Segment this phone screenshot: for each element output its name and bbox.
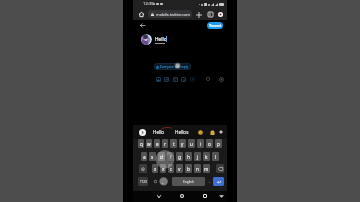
staticText: a <box>143 154 146 160</box>
button[interactable]: m <box>203 164 210 173</box>
button[interactable]: b <box>185 164 192 173</box>
button[interactable]: x <box>160 164 166 173</box>
button[interactable]: s <box>149 152 156 161</box>
staticText: e <box>156 141 159 147</box>
button[interactable]: Emoji <box>179 75 187 83</box>
button[interactable]: ?123 <box>138 177 148 186</box>
staticText: s <box>151 154 154 160</box>
staticText: n <box>196 166 199 172</box>
button[interactable]: t <box>170 139 177 148</box>
staticText: Tweet <box>209 23 222 28</box>
staticText: g <box>178 154 181 160</box>
button[interactable]: i <box>197 139 204 148</box>
button[interactable]: Add another tweet <box>217 75 225 83</box>
button[interactable]: p <box>215 139 222 148</box>
button[interactable]: Hide keyboard <box>217 192 225 200</box>
staticText: mobile.twitter.com <box>156 12 190 17</box>
button[interactable]: Emoji <box>196 128 204 136</box>
button[interactable]: o <box>206 139 213 148</box>
button[interactable]: z <box>152 164 158 173</box>
button[interactable]: Period <box>206 176 213 187</box>
button[interactable]: Recent apps <box>201 192 209 200</box>
staticText: r <box>164 141 166 147</box>
staticText: z <box>154 166 157 172</box>
button[interactable]: g <box>176 152 183 161</box>
button[interactable]: Back <box>138 21 147 30</box>
button[interactable]: Hellos <box>171 125 192 139</box>
button[interactable]: Back <box>155 192 163 200</box>
staticText: Hello <box>155 36 167 43</box>
staticText: . <box>209 179 211 184</box>
staticText: English <box>183 180 194 184</box>
button[interactable]: e <box>154 139 160 148</box>
button[interactable]: h <box>185 152 192 161</box>
staticText: Hello <box>153 129 165 135</box>
button[interactable]: Enter <box>213 177 224 186</box>
button[interactable]: y <box>179 139 186 148</box>
staticText: ?123 <box>140 180 147 184</box>
staticText: u <box>190 141 193 147</box>
staticText: w <box>147 141 151 147</box>
button[interactable]: f <box>167 152 174 161</box>
staticText: y <box>181 141 184 147</box>
staticText: Everyone can reply <box>160 65 189 69</box>
button[interactable]: Tweet <box>207 22 223 29</box>
button[interactable]: j <box>194 152 201 161</box>
button[interactable]: a <box>141 152 147 161</box>
button[interactable]: c <box>168 164 174 173</box>
staticText: o <box>208 141 211 147</box>
button[interactable]: k <box>203 152 210 161</box>
button[interactable]: Home <box>137 10 146 19</box>
button[interactable]: Emoji keyboard <box>151 176 159 187</box>
button[interactable]: Home <box>178 192 186 200</box>
staticText: t <box>173 141 175 147</box>
staticText: , <box>162 179 164 184</box>
button[interactable]: u <box>188 139 195 148</box>
staticText: Hellos <box>175 129 189 135</box>
staticText: p <box>217 141 220 147</box>
staticText: d <box>160 154 163 160</box>
button[interactable]: English <box>172 177 205 186</box>
button[interactable]: Shift <box>139 164 147 173</box>
button[interactable]: mobile.twitter.com <box>148 10 192 18</box>
staticText: f <box>170 154 172 160</box>
staticText: v <box>178 166 181 172</box>
button[interactable]: q <box>138 139 144 148</box>
button[interactable]: Voice input <box>217 128 225 136</box>
button[interactable]: Stickers <box>208 128 216 136</box>
button[interactable]: Backspace <box>216 164 224 173</box>
button[interactable]: Profile picture <box>141 34 152 45</box>
button[interactable]: r <box>162 139 168 148</box>
button[interactable]: Comma <box>159 176 167 187</box>
button[interactable]: l <box>212 152 219 161</box>
button[interactable]: Add photo <box>154 75 162 83</box>
button[interactable]: Everyone can reply <box>154 63 191 70</box>
button[interactable]: d <box>158 152 165 161</box>
staticText: k <box>205 154 208 160</box>
button[interactable]: Hello <box>148 125 169 139</box>
staticText: l <box>215 154 217 160</box>
staticText: 12:39 <box>143 1 154 7</box>
button[interactable]: More suggestions <box>139 129 146 136</box>
staticText: i <box>200 141 202 147</box>
staticText: h <box>187 154 190 160</box>
staticText: m <box>204 166 209 172</box>
button[interactable]: w <box>146 139 152 148</box>
button[interactable]: Add GIF <box>162 75 170 83</box>
staticText: c <box>170 166 173 172</box>
button[interactable]: New tab <box>194 10 203 19</box>
button[interactable]: Tabs <box>206 10 215 19</box>
staticText: x <box>162 166 165 172</box>
staticText: b <box>187 166 190 172</box>
button[interactable]: Add location <box>188 75 196 83</box>
button[interactable]: n <box>194 164 201 173</box>
button[interactable]: Profile <box>216 10 225 19</box>
button[interactable]: Add poll <box>171 75 179 83</box>
staticText: j <box>197 154 199 160</box>
staticText: q <box>140 141 143 147</box>
button[interactable]: v <box>176 164 183 173</box>
